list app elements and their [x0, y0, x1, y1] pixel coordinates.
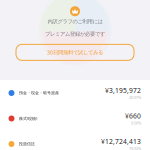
button[interactable]: 預金・現金・暗号資産	[0, 80, 150, 106]
staticText: 内訳グラフのご利用には	[47, 18, 102, 25]
button[interactable]: 30日間無料で試してみる	[16, 44, 134, 60]
staticText: ¥660	[125, 111, 141, 120]
button[interactable]: 投資信託	[0, 131, 150, 150]
staticText: 20.07%	[129, 95, 141, 100]
staticText: 投資信託	[19, 141, 35, 146]
staticText: 預金・現金・暗号資産	[19, 90, 59, 95]
staticText: 30日間無料で試してみる	[47, 49, 103, 56]
button[interactable]: 株式(現物)	[0, 106, 150, 131]
staticText: 79.92%	[129, 146, 141, 150]
staticText: ¥12,724,413	[101, 137, 141, 146]
staticText: ¥3,195,972	[105, 86, 141, 95]
staticText: 株式(現物)	[19, 116, 37, 121]
staticText: プレミアム登録が必要です	[45, 31, 105, 37]
staticText: 0.00%	[131, 120, 141, 126]
